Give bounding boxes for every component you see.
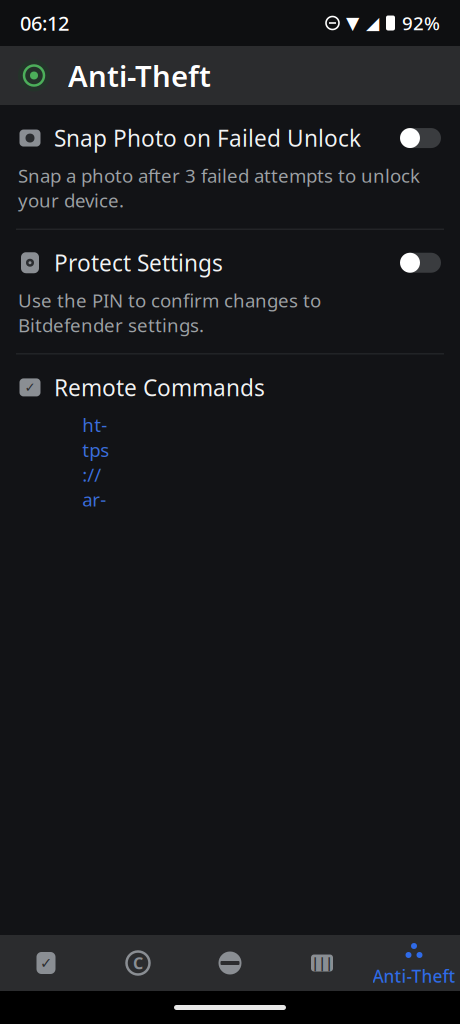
staticText: Remote Commands: [54, 372, 265, 402]
staticText: Use the PIN to confirm changes to Bitdef…: [18, 288, 321, 337]
button[interactable]: Anti-Theft: [368, 935, 460, 991]
staticText: ▼: [346, 13, 359, 33]
button[interactable]: VPN: [184, 935, 276, 991]
button[interactable]: https://armor.netgear.com: [82, 412, 110, 712]
staticText: C: [133, 952, 143, 974]
button[interactable]: ACTIVATE: [316, 903, 442, 952]
button[interactable]: Autopilot: [92, 935, 184, 991]
staticText: 06:12: [20, 10, 69, 36]
staticText: Snap Photo on Failed Unlock: [54, 123, 361, 153]
staticText: |||: [311, 954, 332, 972]
staticText: https://armor.netgear.com: [82, 412, 110, 710]
staticText: ✓: [40, 955, 52, 971]
button[interactable]: Protection: [0, 935, 92, 991]
staticText: Protect Settings: [54, 248, 223, 278]
staticText: Anti-Theft: [372, 964, 455, 987]
staticText: 92%: [402, 11, 440, 35]
staticText: Remote Lock: [54, 985, 192, 1015]
button[interactable]: Messages: [276, 935, 368, 991]
staticText: Snap a photo after 3 failed attempts to …: [18, 163, 420, 213]
staticText: ACTIVATE: [334, 914, 424, 941]
staticText: ◢: [366, 13, 379, 33]
staticText: Anti-Theft: [68, 56, 211, 95]
staticText: ✓: [24, 380, 35, 395]
